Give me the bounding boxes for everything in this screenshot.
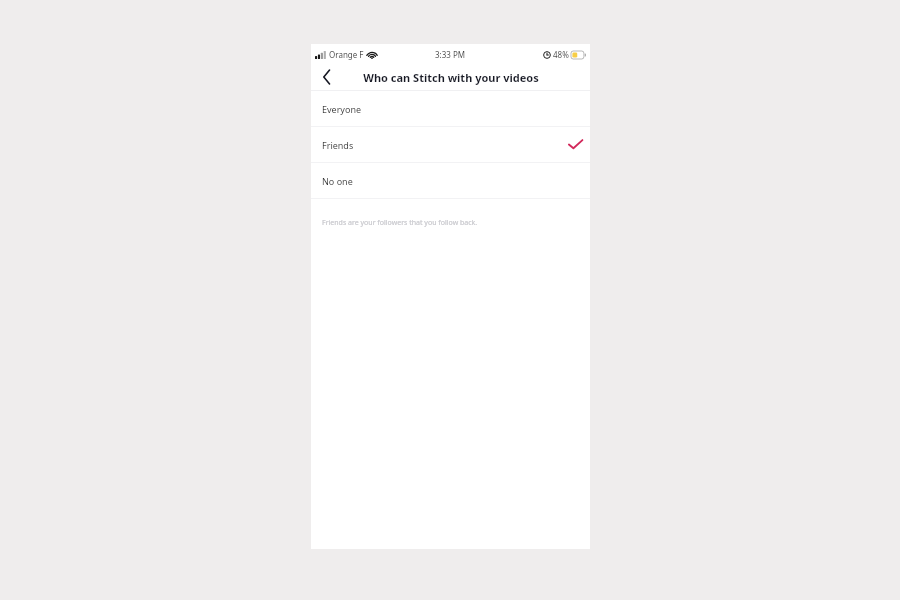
button[interactable]: Back: [311, 64, 343, 90]
staticText: Friends are your followers that you foll…: [322, 218, 478, 228]
staticText: Everyone: [322, 103, 362, 115]
staticText: 48%: [553, 49, 569, 60]
button[interactable]: No one: [311, 163, 590, 198]
button[interactable]: Everyone: [311, 91, 590, 126]
staticText: Who can Stitch with your videos: [363, 70, 539, 85]
staticText: 3:33 PM: [435, 49, 466, 60]
staticText: Orange F: [329, 49, 364, 60]
staticText: Friends: [322, 139, 354, 151]
button[interactable]: Friends: [311, 127, 590, 162]
staticText: No one: [322, 175, 353, 187]
